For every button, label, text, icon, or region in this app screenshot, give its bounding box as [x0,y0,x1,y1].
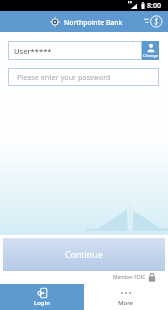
button[interactable]: More [84,284,168,310]
staticText: Northpointe Bank [64,18,123,27]
button[interactable]: Login [0,284,84,310]
staticText: Please enter your password [17,72,111,82]
button[interactable]: Change user [142,41,159,60]
button[interactable]: Continue [3,238,165,271]
button[interactable]: User***** [8,41,142,60]
staticText: 8:00 [147,1,161,11]
staticText: More [118,299,134,307]
staticText: Login [34,299,50,307]
staticText: Continue [65,249,103,261]
button[interactable]: Please enter your password [8,68,159,86]
staticText: User***** [14,46,52,56]
button[interactable]: Rates [146,13,163,30]
staticText: Change [143,53,159,59]
staticText: Member FDIC [113,274,146,281]
